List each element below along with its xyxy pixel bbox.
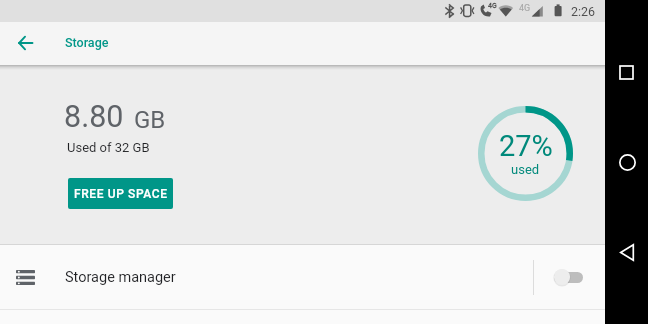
- button[interactable]: FREE UP SPACE: [68, 178, 173, 209]
- staticText: 8.80: [64, 99, 124, 135]
- staticText: Storage: [65, 35, 109, 50]
- staticText: 2:26: [571, 4, 596, 19]
- staticText: 4G: [488, 2, 497, 10]
- staticText: used: [511, 162, 540, 177]
- staticText: 4G: [519, 3, 531, 14]
- staticText: Used of 32 GB: [67, 140, 150, 155]
- staticText: FREE UP SPACE: [74, 187, 168, 201]
- button[interactable]: Back: [611, 236, 641, 266]
- staticText: Storage manager: [65, 269, 176, 286]
- button[interactable]: Storage manager toggle: [534, 245, 605, 309]
- button[interactable]: Recent apps: [611, 57, 641, 87]
- button[interactable]: Home: [611, 147, 641, 177]
- staticText: GB: [134, 106, 166, 134]
- button[interactable]: Back: [8, 22, 42, 65]
- button[interactable]: Storage manager: [0, 245, 605, 309]
- staticText: 27%: [499, 129, 553, 163]
